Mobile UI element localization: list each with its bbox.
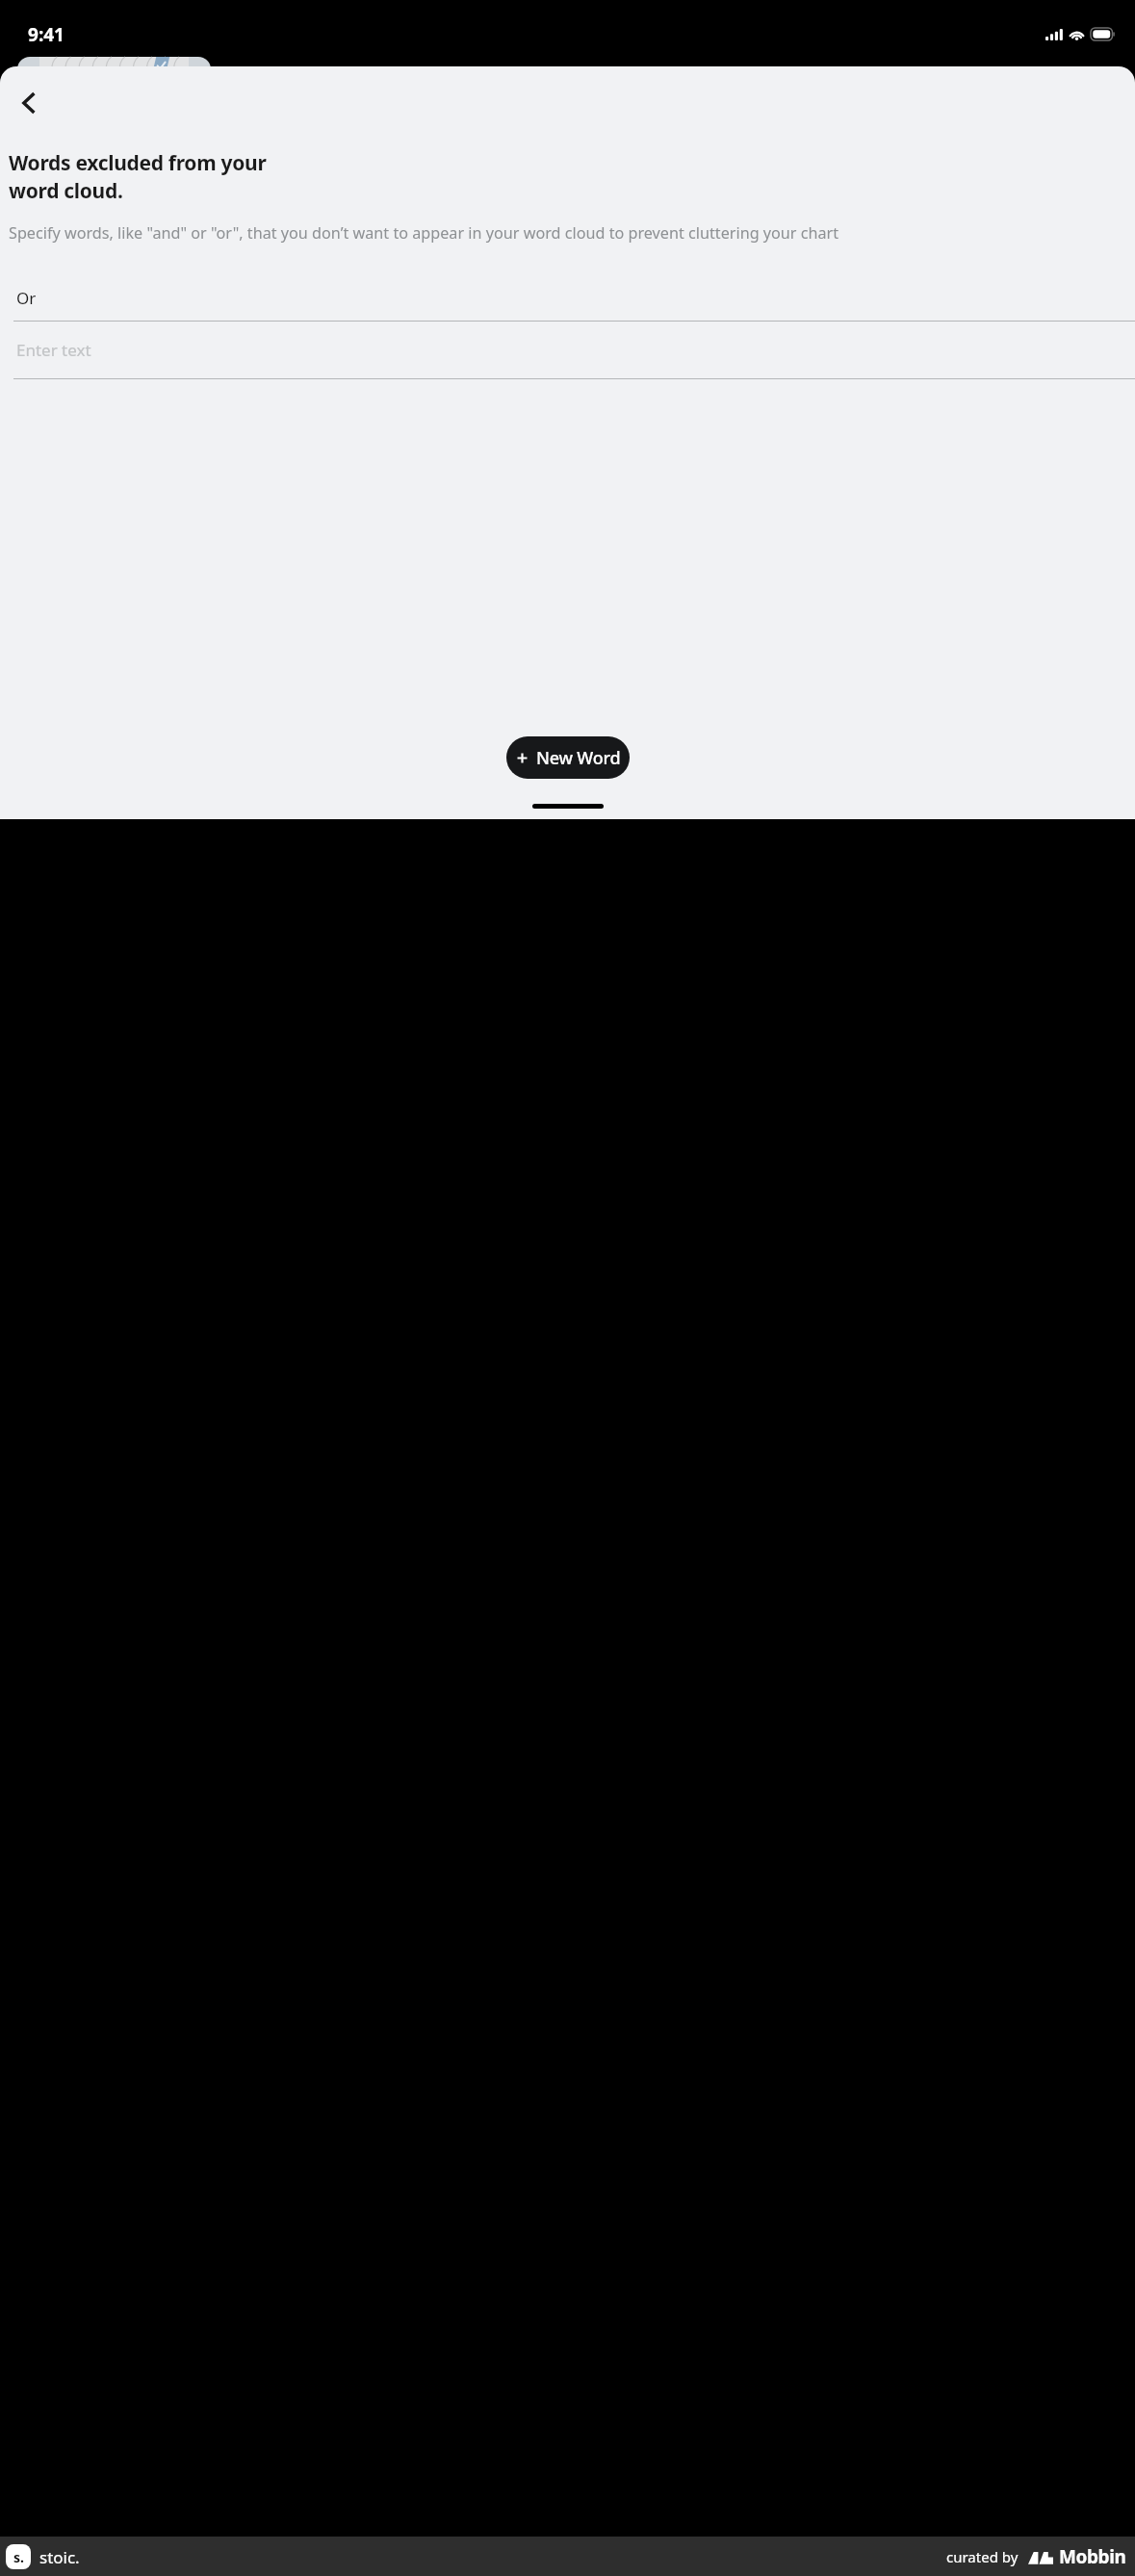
staticText: Specify words, like "and" or "or", that … (9, 222, 839, 244)
staticText: Enter text (16, 339, 91, 361)
staticText: stoic. (39, 2546, 80, 2568)
button[interactable]: Back (4, 78, 54, 128)
staticText: s. (13, 2548, 24, 2566)
staticText: Mobbin (1059, 2544, 1126, 2569)
staticText: curated by (946, 2547, 1019, 2566)
staticText: New Word (536, 746, 621, 770)
staticText: 9:41 (28, 22, 64, 47)
staticText: Or (16, 287, 37, 309)
button[interactable]: New Word (506, 736, 630, 779)
staticText: Words excluded from your word cloud. (9, 149, 267, 205)
button[interactable]: Or (0, 274, 1135, 321)
